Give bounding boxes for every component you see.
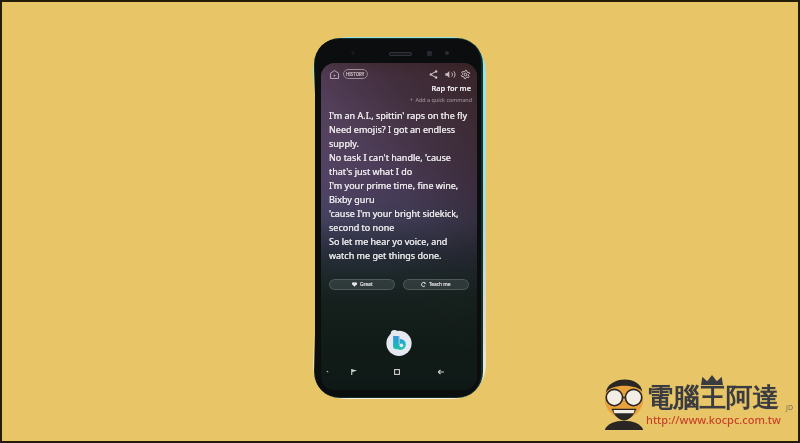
staticText: + Add a quick command (321, 96, 472, 103)
staticText: HISTORY (346, 71, 365, 77)
button[interactable]: HISTORY (343, 69, 368, 79)
button[interactable]: Share (427, 68, 439, 80)
button[interactable]: Great (329, 279, 395, 290)
button[interactable]: Bixby (384, 326, 414, 356)
button[interactable]: Teach me (403, 279, 469, 290)
staticText: Great (360, 281, 373, 288)
staticText: http://www.kocpc.com.tw (646, 412, 781, 427)
button[interactable]: Settings (459, 68, 471, 80)
staticText: Rap for me (321, 83, 471, 93)
staticText: Teach me (429, 281, 451, 288)
staticText: JD (786, 403, 794, 413)
button[interactable]: Recent apps (348, 366, 359, 377)
button[interactable]: Back (435, 366, 446, 377)
staticText: I'm an A.I., spittin' raps on the fly Ne… (329, 109, 468, 261)
button[interactable]: Home (329, 69, 340, 80)
button[interactable]: Volume (443, 68, 455, 80)
button[interactable]: Home (391, 366, 402, 377)
staticText: 電腦王阿達 (646, 381, 779, 414)
